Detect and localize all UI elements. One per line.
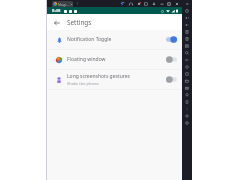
button[interactable]: volup bbox=[182, 14, 192, 21]
button[interactable]: rotate bbox=[182, 28, 192, 35]
button[interactable]: screenshot bbox=[182, 42, 192, 49]
button[interactable]: chevrons bbox=[182, 0, 192, 7]
button[interactable]: Toolbar item bbox=[136, 1, 141, 6]
staticText: Settings bbox=[67, 18, 92, 27]
staticText: 8:48 bbox=[52, 8, 61, 14]
staticText: Shake the phone bbox=[67, 81, 99, 86]
button[interactable]: settings bbox=[182, 112, 192, 119]
button[interactable]: Toolbar item bbox=[166, 1, 171, 6]
button[interactable]: recent bbox=[182, 70, 192, 77]
staticText: Magi... bbox=[58, 2, 69, 7]
button[interactable]: folder bbox=[182, 77, 192, 84]
button[interactable]: Floating window bbox=[47, 50, 182, 69]
button[interactable]: Toolbar item bbox=[151, 1, 156, 6]
button[interactable]: Long screenshots gestures bbox=[47, 70, 182, 89]
button[interactable]: voldn bbox=[182, 21, 192, 28]
button[interactable]: rotate2 bbox=[182, 35, 192, 42]
button[interactable]: Magi... bbox=[52, 1, 73, 7]
button[interactable]: Toolbar item bbox=[143, 1, 148, 6]
button[interactable]: home bbox=[182, 63, 192, 70]
button[interactable]: Toolbar item bbox=[159, 1, 164, 6]
staticText: Floating window bbox=[67, 56, 106, 63]
button[interactable]: zoom bbox=[182, 49, 192, 56]
button[interactable]: Toolbar item bbox=[119, 1, 124, 6]
button[interactable]: power bbox=[182, 7, 192, 14]
staticText: Long screenshots gestures bbox=[67, 73, 130, 80]
button[interactable]: Notification Toggle bbox=[47, 30, 182, 49]
button[interactable]: loc bbox=[182, 91, 192, 98]
button[interactable]: more bbox=[182, 105, 192, 112]
button[interactable]: back bbox=[182, 56, 192, 63]
button[interactable]: camera bbox=[182, 84, 192, 91]
staticText: Notification Toggle bbox=[67, 36, 112, 43]
button[interactable]: help bbox=[182, 119, 192, 126]
button[interactable]: Back bbox=[51, 17, 62, 28]
button[interactable]: phone bbox=[182, 98, 192, 105]
button[interactable]: Toolbar item bbox=[128, 1, 133, 6]
button[interactable]: Toolbar item bbox=[174, 1, 179, 6]
